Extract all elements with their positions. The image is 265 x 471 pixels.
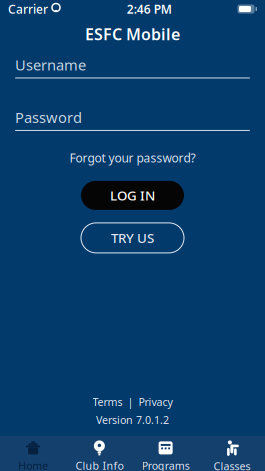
staticText: ESFC Mobile (85, 23, 180, 45)
button[interactable]: LOG IN (81, 181, 184, 210)
staticText: TRY US (111, 229, 154, 247)
staticText: Programs (142, 458, 190, 471)
staticText: Home (18, 458, 48, 471)
staticText: Version 7.0.1.2 (96, 413, 169, 427)
staticText: Username (15, 55, 86, 74)
button[interactable]: Terms (92, 395, 122, 409)
staticText: Terms (92, 395, 122, 409)
button[interactable]: Privacy (138, 395, 172, 409)
staticText: Carrier (8, 1, 48, 17)
button[interactable]: Forgot your password? (59, 145, 205, 171)
staticText: Club Info (75, 458, 123, 471)
button[interactable]: Club Info (66, 434, 132, 471)
staticText: LOG IN (110, 186, 155, 204)
staticText: Privacy (138, 395, 172, 409)
button[interactable]: Programs (132, 434, 199, 471)
staticText: 2:46 PM (127, 1, 172, 17)
button[interactable]: TRY US (81, 223, 184, 253)
staticText: Forgot your password? (69, 150, 195, 166)
staticText: Classes (213, 459, 250, 471)
button[interactable]: Classes (199, 434, 265, 471)
staticText: | (127, 395, 133, 409)
staticText: Password (15, 107, 82, 127)
button[interactable]: Home (0, 434, 66, 471)
